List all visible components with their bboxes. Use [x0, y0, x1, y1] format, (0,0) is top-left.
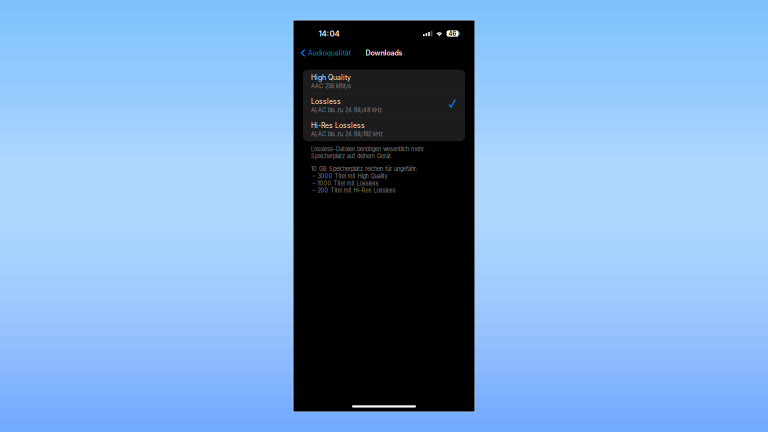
- staticText: – 3000 Titel mit High Quality: [312, 173, 387, 180]
- staticText: Speicherplatz auf deinem Gerät.: [311, 153, 393, 160]
- staticText: – 1000 Titel mit Lossless: [312, 180, 378, 187]
- staticText: 14:04: [318, 29, 339, 38]
- staticText: ALAC bis zu 24 Bit/192 kHz: [311, 131, 383, 138]
- button[interactable]: Audioqualität: [293, 45, 356, 61]
- staticText: Hi-Res Lossless: [311, 121, 365, 130]
- staticText: Lossless-Dateien benötigen wesentlich me…: [311, 146, 424, 152]
- button[interactable]: Lossless: [303, 94, 465, 117]
- staticText: – 200 Titel mit Hi-Res Lossless: [312, 187, 395, 194]
- staticText: 10 GB Speicherplatz reichen für ungefähr…: [311, 166, 418, 172]
- staticText: Lossless: [311, 97, 341, 106]
- staticText: High Quality: [311, 73, 351, 82]
- staticText: AAC 256 kBit/s: [311, 83, 351, 90]
- button[interactable]: Hi-Res Lossless: [303, 118, 465, 141]
- button[interactable]: High Quality: [303, 70, 465, 93]
- staticText: Downloads: [365, 49, 402, 57]
- staticText: 46: [449, 30, 457, 37]
- staticText: ALAC bis zu 24 Bit/48 kHz: [311, 107, 382, 114]
- staticText: Audioqualität: [308, 49, 351, 57]
